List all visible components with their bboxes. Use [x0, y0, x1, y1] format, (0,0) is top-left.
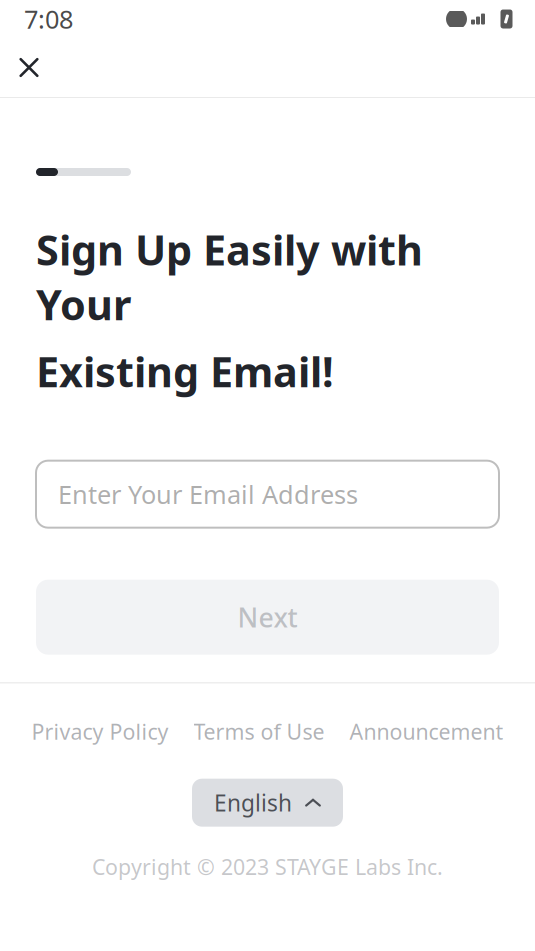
staticText: Enter Your Email Address: [58, 477, 358, 511]
button[interactable]: Announcement: [349, 711, 503, 752]
button[interactable]: Privacy Policy: [31, 711, 168, 752]
staticText: Privacy Policy: [31, 717, 168, 746]
staticText: Sign Up Easily with Your: [36, 222, 423, 332]
staticText: Announcement: [349, 717, 503, 746]
staticText: Terms of Use: [193, 717, 324, 746]
staticText: Next: [237, 599, 297, 635]
staticText: English: [214, 788, 292, 818]
button[interactable]: Next: [36, 580, 499, 655]
button[interactable]: Close: [1, 39, 57, 95]
staticText: Existing Email!: [36, 344, 334, 399]
button[interactable]: Terms of Use: [193, 711, 324, 752]
staticText: 7:08: [24, 2, 73, 36]
button[interactable]: English: [192, 779, 343, 827]
staticText: Copyright © 2023 STAYGE Labs Inc.: [92, 853, 443, 881]
